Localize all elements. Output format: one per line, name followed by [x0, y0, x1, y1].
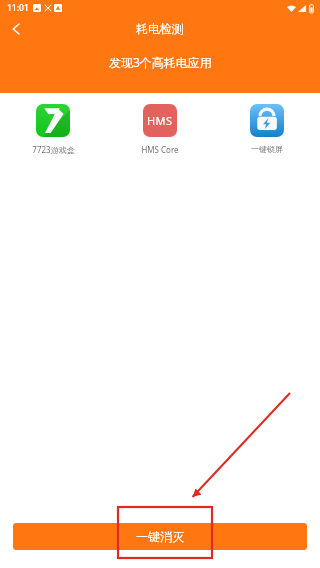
button[interactable]: 一键消灭 [13, 523, 307, 550]
staticText: HMS [147, 113, 173, 128]
staticText: 11:01 [7, 2, 29, 14]
button[interactable]: Back [4, 17, 28, 41]
staticText: 耗电检测 [136, 21, 184, 36]
staticText: 一键锁屏 [251, 144, 283, 154]
button[interactable]: 7723游戏盒 [0, 104, 106, 155]
staticText: 一键消灭 [136, 529, 184, 544]
button[interactable]: 一键锁屏 [213, 104, 320, 154]
staticText: HMS Core [141, 144, 179, 155]
button[interactable]: HMS [106, 104, 213, 155]
staticText: 7723游戏盒 [32, 144, 75, 155]
staticText: 发现3个高耗电应用 [109, 54, 212, 70]
